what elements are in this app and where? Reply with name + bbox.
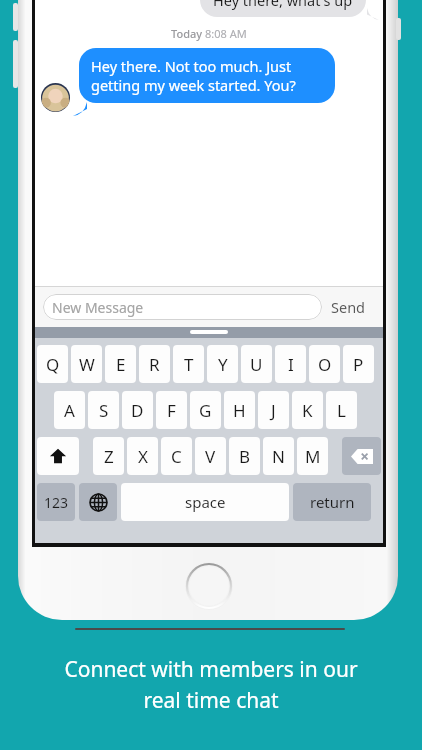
button[interactable]: X bbox=[127, 437, 158, 475]
staticText: T bbox=[184, 353, 194, 376]
staticText: I bbox=[288, 353, 294, 376]
staticText: New Message bbox=[52, 298, 144, 317]
staticText: D bbox=[131, 399, 144, 422]
staticText: 8:08 AM bbox=[205, 26, 247, 41]
staticText: B bbox=[239, 445, 251, 468]
staticText: G bbox=[199, 399, 212, 422]
button[interactable]: Delete bbox=[342, 437, 381, 475]
staticText: S bbox=[99, 399, 109, 422]
staticText: Send bbox=[331, 297, 366, 317]
button[interactable]: J bbox=[258, 391, 289, 429]
button[interactable]: Hey there, what's up bbox=[200, 0, 366, 17]
staticText: A bbox=[64, 399, 75, 422]
staticText: Connect with members in our real time ch… bbox=[64, 655, 358, 714]
staticText: V bbox=[205, 445, 216, 468]
button[interactable]: T bbox=[173, 345, 204, 383]
button[interactable]: M bbox=[297, 437, 328, 475]
button[interactable]: Shift bbox=[37, 437, 79, 475]
button[interactable]: Send bbox=[322, 293, 375, 321]
button[interactable]: G bbox=[190, 391, 221, 429]
button[interactable]: P bbox=[343, 345, 374, 383]
staticText: Today bbox=[171, 26, 205, 41]
button[interactable]: Next keyboard bbox=[79, 483, 117, 521]
button[interactable]: E bbox=[105, 345, 136, 383]
staticText: K bbox=[302, 399, 313, 422]
button[interactable]: R bbox=[139, 345, 170, 383]
button[interactable]: F bbox=[156, 391, 187, 429]
button[interactable]: return bbox=[293, 483, 371, 521]
button[interactable]: N bbox=[263, 437, 294, 475]
staticText: X bbox=[138, 445, 148, 468]
staticText: Hey there. Not too much. Just getting my… bbox=[91, 56, 323, 95]
button[interactable]: space bbox=[121, 483, 289, 521]
staticText: space bbox=[185, 492, 226, 512]
staticText: N bbox=[272, 445, 285, 468]
button[interactable]: New Message bbox=[43, 294, 322, 320]
button[interactable]: D bbox=[122, 391, 153, 429]
button[interactable]: I bbox=[275, 345, 306, 383]
staticText: O bbox=[318, 353, 332, 376]
staticText: C bbox=[171, 445, 182, 468]
staticText: L bbox=[337, 399, 346, 422]
staticText: W bbox=[79, 353, 95, 376]
button[interactable]: H bbox=[224, 391, 255, 429]
staticText: U bbox=[250, 353, 263, 376]
button[interactable]: V bbox=[195, 437, 226, 475]
button[interactable]: O bbox=[309, 345, 340, 383]
button[interactable]: Z bbox=[93, 437, 124, 475]
button[interactable]: W bbox=[71, 345, 102, 383]
staticText: Hey there, what's up bbox=[213, 0, 353, 10]
button[interactable]: B bbox=[229, 437, 260, 475]
staticText: Y bbox=[218, 353, 228, 376]
button[interactable]: K bbox=[292, 391, 323, 429]
staticText: P bbox=[353, 353, 364, 376]
button[interactable]: C bbox=[161, 437, 192, 475]
staticText: R bbox=[149, 353, 160, 376]
button[interactable]: Q bbox=[37, 345, 68, 383]
staticText: return bbox=[310, 492, 355, 512]
button[interactable]: Profile photo bbox=[41, 83, 70, 112]
button[interactable]: Y bbox=[207, 345, 238, 383]
button[interactable]: U bbox=[241, 345, 272, 383]
staticText: M bbox=[305, 445, 321, 468]
button[interactable]: Hey there. Not too much. Just getting my… bbox=[79, 48, 335, 103]
button[interactable]: L bbox=[326, 391, 357, 429]
button[interactable]: A bbox=[54, 391, 85, 429]
staticText: H bbox=[233, 399, 246, 422]
staticText: E bbox=[116, 353, 126, 376]
button[interactable]: Home bbox=[185, 562, 233, 610]
staticText: Z bbox=[104, 445, 114, 468]
button[interactable]: S bbox=[88, 391, 119, 429]
staticText: 123 bbox=[44, 493, 69, 512]
staticText: F bbox=[167, 399, 176, 422]
staticText: J bbox=[271, 399, 276, 422]
button[interactable]: 123 bbox=[37, 483, 75, 521]
staticText: Q bbox=[46, 353, 60, 376]
